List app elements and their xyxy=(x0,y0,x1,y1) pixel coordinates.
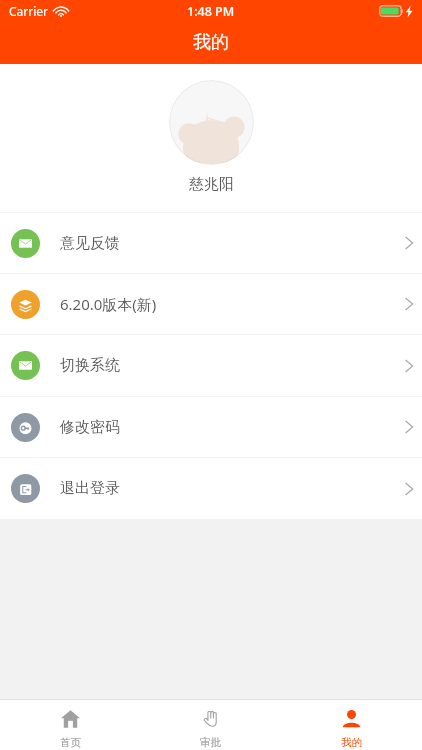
staticText: 6.20.0版本(新) xyxy=(60,294,157,314)
button[interactable]: 退出登录 xyxy=(0,458,422,519)
staticText: 退出登录 xyxy=(60,479,120,498)
staticText: 切换系统 xyxy=(60,356,120,375)
staticText: Carrier xyxy=(9,3,49,19)
button[interactable]: 切换系统 xyxy=(0,335,422,396)
staticText: 慈兆阳 xyxy=(189,175,234,194)
staticText: 首页 xyxy=(60,736,81,749)
staticText: 修改密码 xyxy=(60,418,120,437)
staticText: 意见反馈 xyxy=(60,234,120,253)
button[interactable]: 6.20.0版本(新) xyxy=(0,274,422,334)
button[interactable]: 意见反馈 xyxy=(0,213,422,273)
staticText: 我的 xyxy=(341,736,362,749)
staticText: 1:48 PM xyxy=(187,3,235,20)
button[interactable]: Profile xyxy=(281,700,422,750)
button[interactable]: 修改密码 xyxy=(0,397,422,457)
button[interactable]: Approvals xyxy=(140,700,281,750)
button[interactable]: Home xyxy=(0,700,140,750)
staticText: 审批 xyxy=(200,736,221,749)
staticText: 我的 xyxy=(193,31,229,54)
